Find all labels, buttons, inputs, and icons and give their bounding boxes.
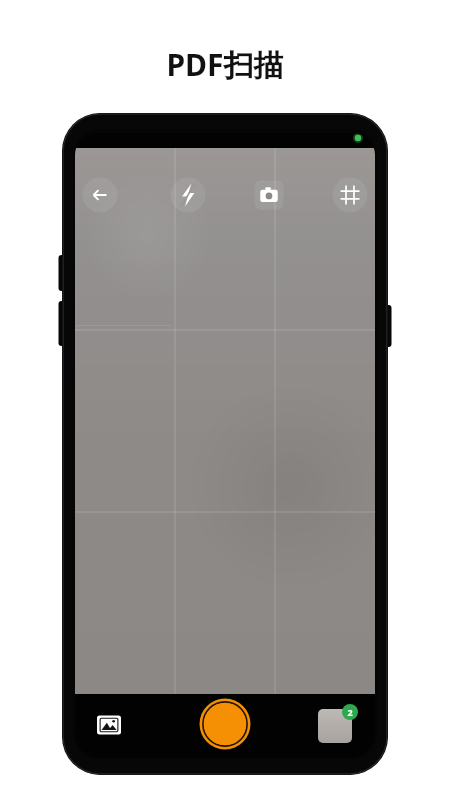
button[interactable]: Flash off — [169, 176, 207, 214]
button[interactable]: Shutter — [199, 698, 251, 750]
button[interactable]: Back — [81, 176, 119, 214]
button[interactable]: Grid — [331, 176, 369, 214]
staticText: 2 — [347, 706, 353, 718]
button[interactable]: Gallery — [93, 709, 125, 741]
button[interactable]: Camera — [250, 176, 288, 214]
button[interactable]: Captured pages — [318, 704, 362, 748]
staticText: PDF扫描 — [0, 44, 450, 800]
